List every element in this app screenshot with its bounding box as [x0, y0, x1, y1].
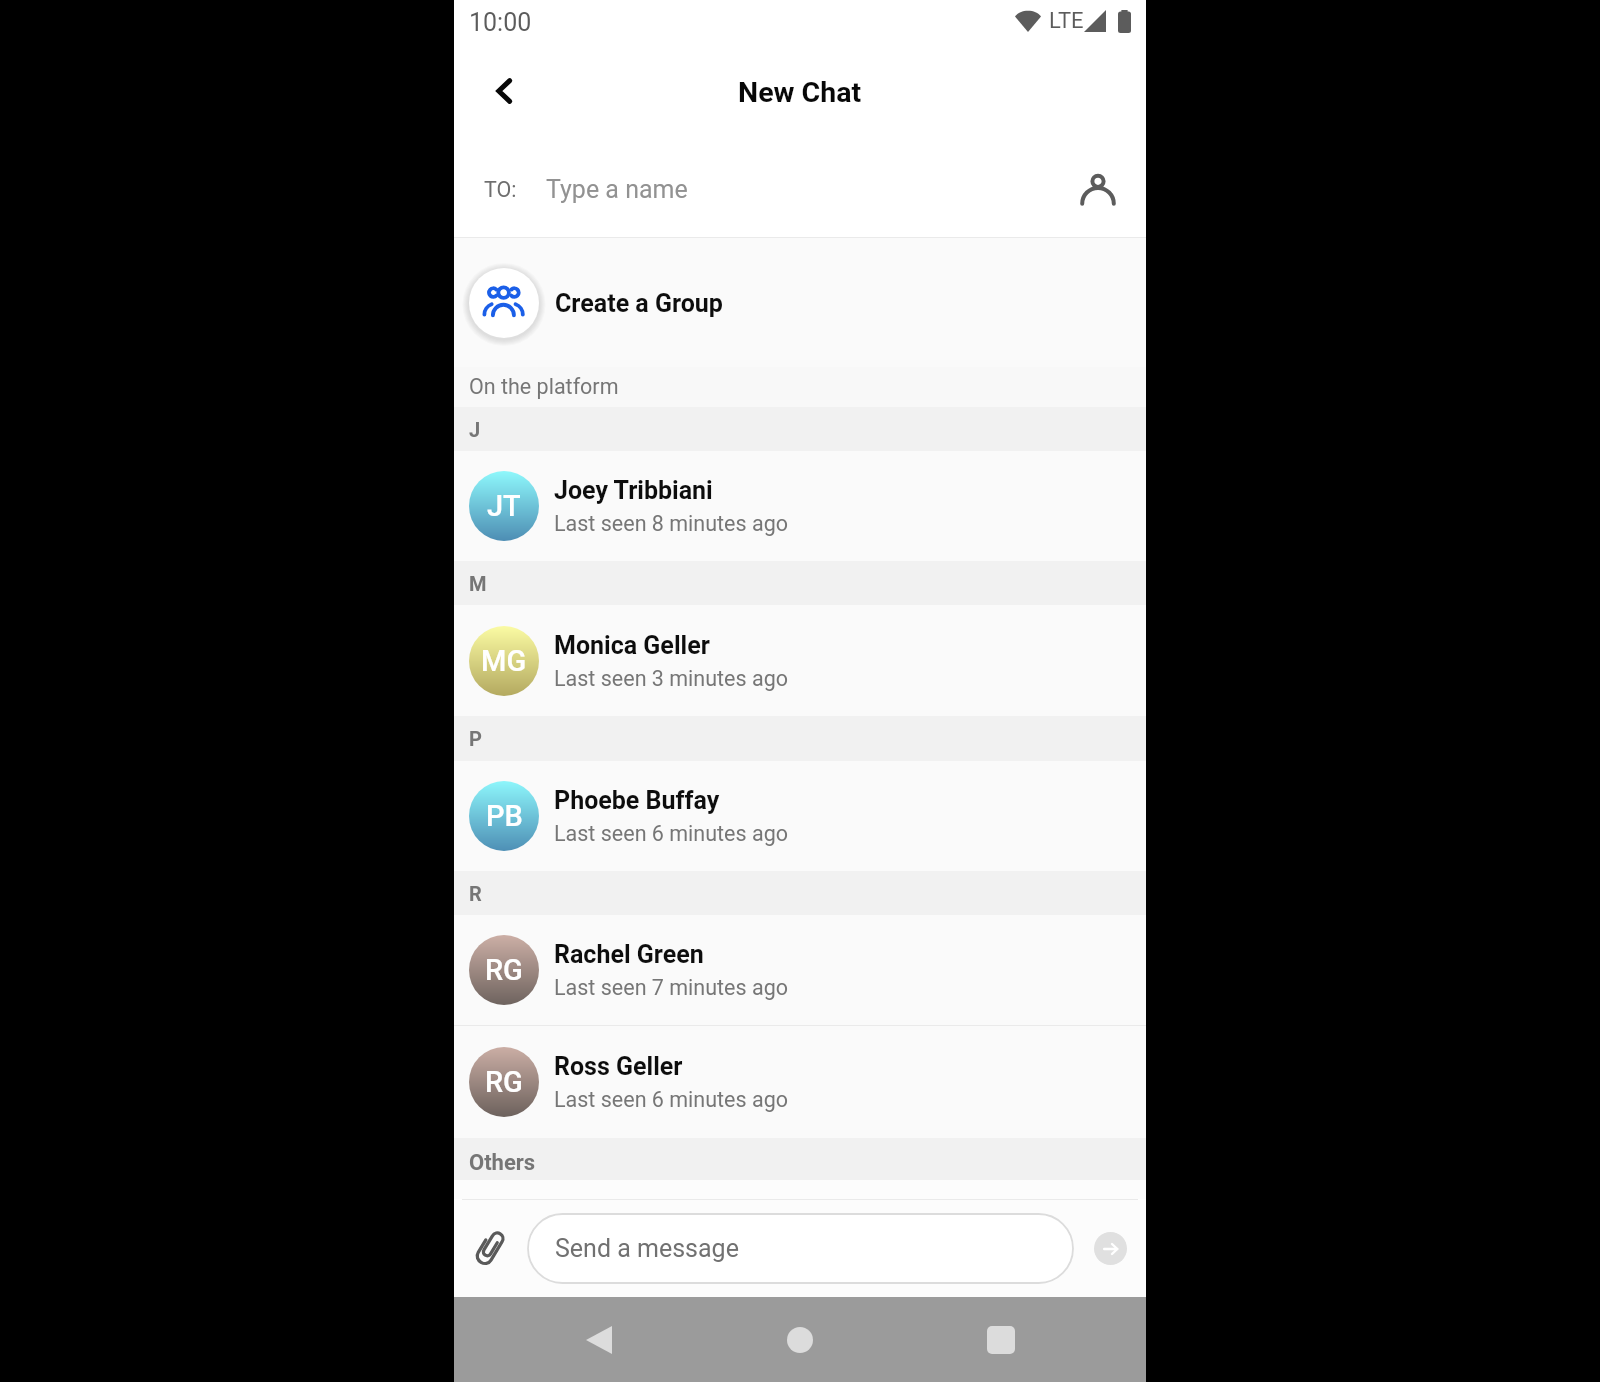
button[interactable]: Back — [476, 63, 532, 119]
button[interactable]: Send a message — [528, 1214, 1073, 1283]
staticText: 10:00 — [469, 8, 532, 37]
staticText: Send a message — [555, 1234, 739, 1263]
staticText: Last seen 8 minutes ago — [554, 511, 788, 536]
staticText: Create a Group — [555, 289, 723, 318]
staticText: Others — [469, 1150, 536, 1176]
staticText: Last seen 6 minutes ago — [554, 821, 788, 846]
button[interactable]: Create a Group — [454, 238, 1146, 367]
staticText: RG — [485, 953, 523, 987]
button[interactable]: Back — [569, 1310, 629, 1370]
staticText: RG — [485, 1065, 523, 1099]
staticText: MG — [481, 644, 527, 678]
button[interactable]: MG — [454, 605, 1146, 716]
button[interactable]: Send message — [1094, 1232, 1127, 1265]
staticText: On the platform — [469, 374, 619, 399]
staticText: New Chat — [738, 76, 862, 109]
staticText: TO: — [484, 177, 517, 202]
staticText: Last seen 3 minutes ago — [554, 666, 788, 691]
button[interactable]: RG — [454, 915, 1146, 1025]
button[interactable]: PB — [454, 761, 1146, 871]
staticText: P — [469, 727, 482, 750]
staticText: J — [469, 418, 481, 441]
staticText: Last seen 6 minutes ago — [554, 1087, 788, 1112]
staticText: JT — [487, 489, 521, 523]
staticText: Phoebe Buffay — [554, 786, 720, 815]
staticText: Type a name — [546, 175, 688, 204]
staticText: Monica Geller — [554, 631, 710, 660]
staticText: Joey Tribbiani — [554, 476, 713, 505]
staticText: Last seen 7 minutes ago — [554, 975, 788, 1000]
button[interactable]: JT — [454, 451, 1146, 561]
button[interactable]: Home — [770, 1310, 830, 1370]
staticText: LTE — [1049, 8, 1084, 34]
button[interactable]: Add contact — [1070, 162, 1126, 218]
staticText: PB — [486, 799, 523, 833]
button[interactable]: Recent apps — [971, 1310, 1031, 1370]
staticText: Rachel Green — [554, 940, 704, 969]
button[interactable]: RG — [454, 1026, 1146, 1138]
staticText: Ross Geller — [554, 1052, 683, 1081]
staticText: M — [469, 572, 487, 595]
staticText: R — [469, 882, 482, 905]
button[interactable]: Attach file — [462, 1222, 516, 1276]
